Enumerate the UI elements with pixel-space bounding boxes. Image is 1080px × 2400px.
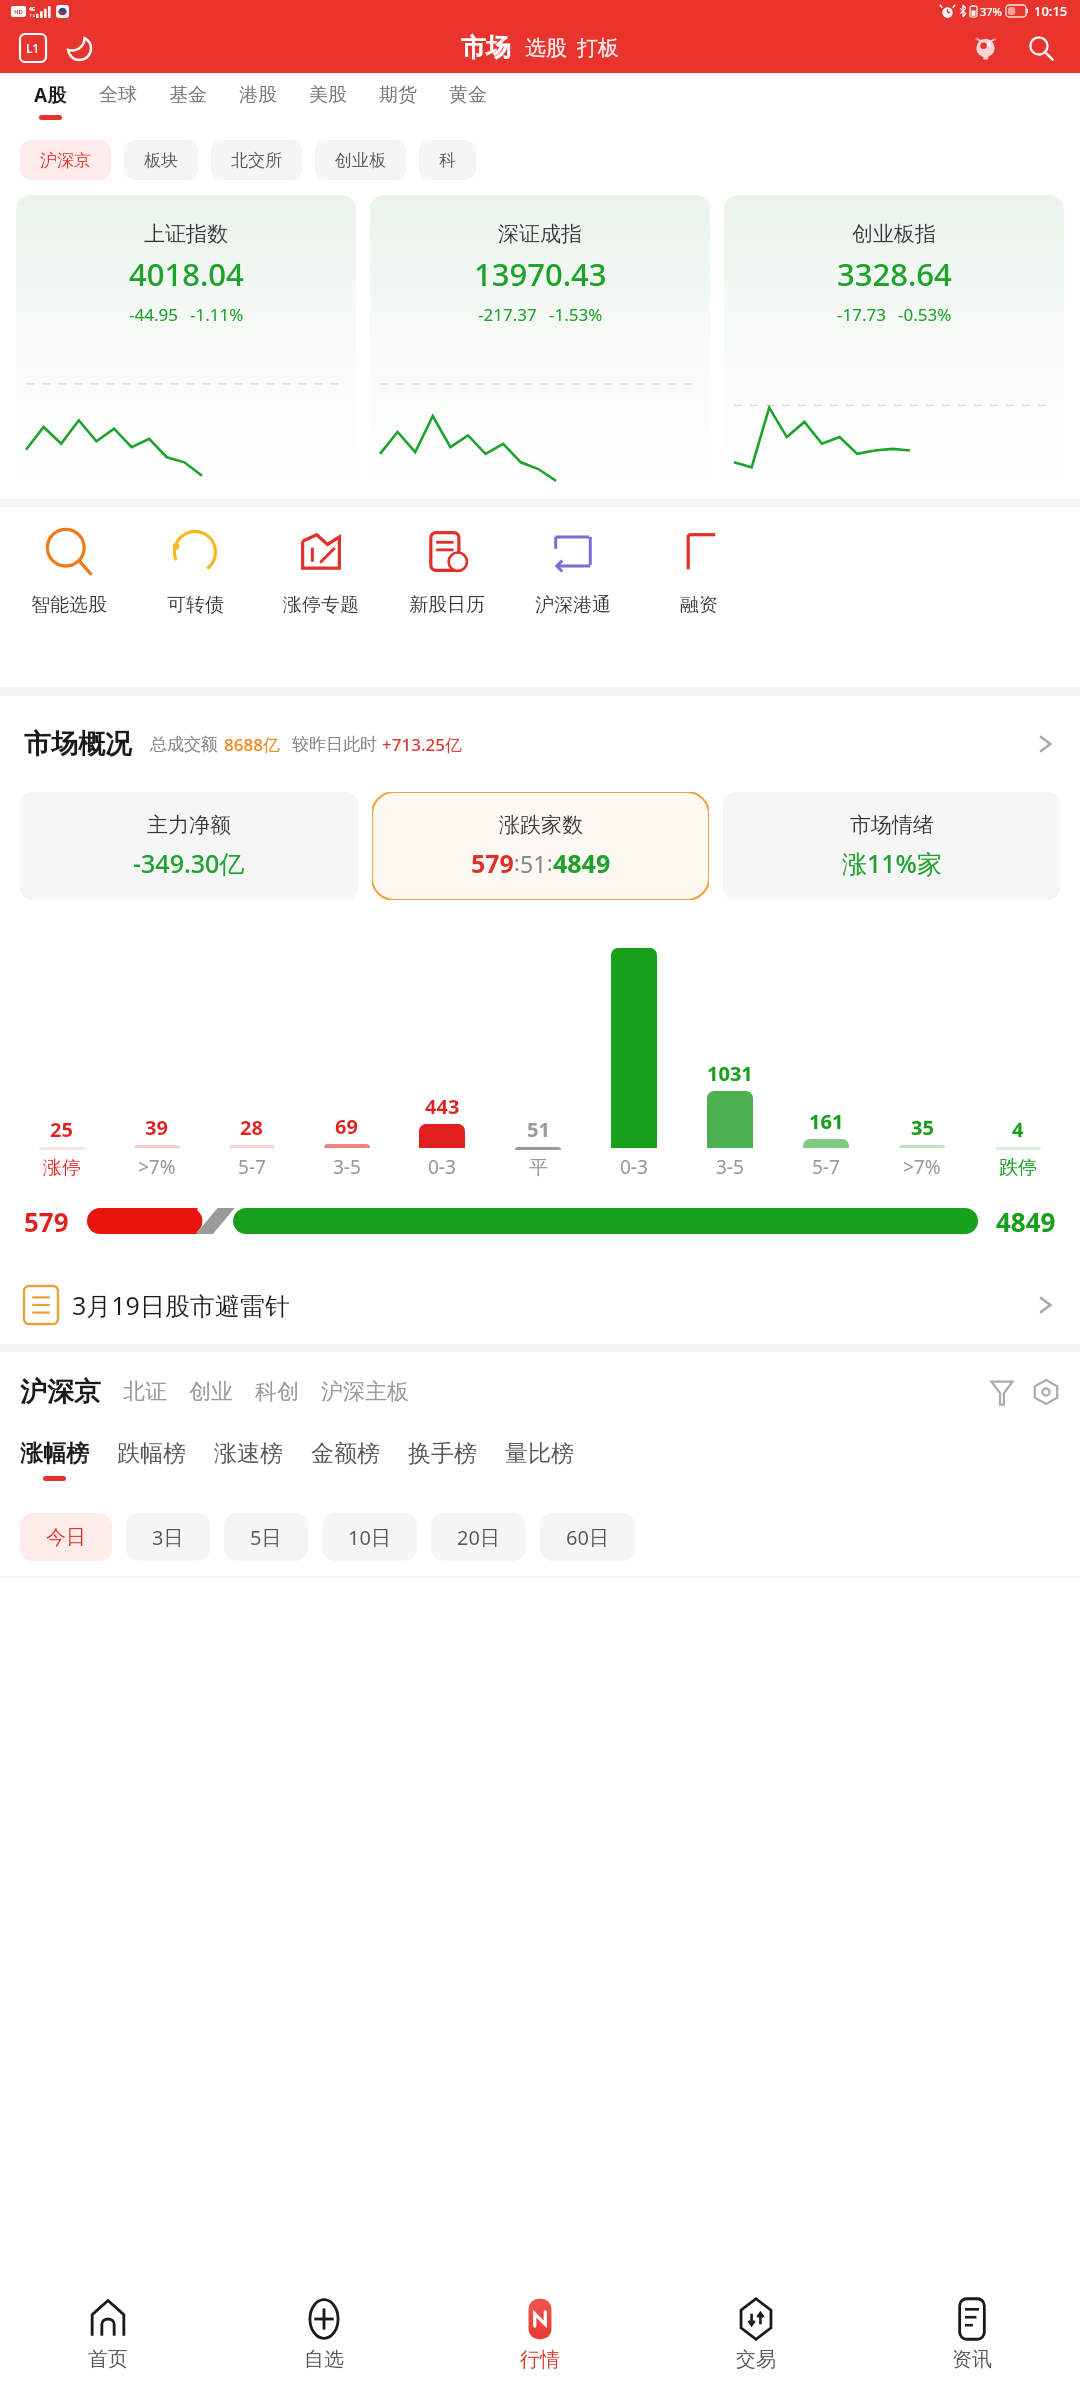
staticText: 深证成指 — [498, 221, 582, 247]
button[interactable]: 换手榜 — [408, 1439, 477, 1481]
button[interactable]: 涨跌家数 — [372, 792, 709, 900]
button[interactable]: 涨停专题 — [258, 525, 384, 617]
button[interactable]: Search — [1024, 31, 1058, 65]
button[interactable]: 60日 — [540, 1513, 635, 1561]
button[interactable]: 首页 — [0, 2268, 216, 2400]
button[interactable]: 涨幅榜 — [20, 1439, 89, 1481]
staticText: 上证指数 — [144, 221, 228, 247]
staticText: 涨11%家 — [842, 846, 942, 880]
button[interactable]: 创业板指 — [724, 195, 1064, 495]
button[interactable]: 20日 — [431, 1513, 526, 1561]
button[interactable]: 沪深京 — [20, 1375, 101, 1409]
button[interactable]: 全球 — [99, 73, 137, 129]
staticText: 3月19日股市避雷针 — [72, 1288, 290, 1322]
button[interactable]: 量比榜 — [505, 1439, 574, 1481]
staticText: 443 — [425, 1093, 460, 1120]
staticText: 10:15 — [1034, 2, 1068, 20]
button[interactable]: 深证成指 — [370, 195, 710, 495]
staticText: ↑↓ — [29, 13, 36, 18]
staticText: 涨停 — [43, 1156, 81, 1180]
staticText: 10日 — [348, 1524, 391, 1551]
staticText: 51 — [520, 848, 547, 879]
button[interactable]: 基金 — [169, 73, 207, 129]
button[interactable]: 市场 — [461, 32, 511, 63]
button[interactable]: 10日 — [322, 1513, 417, 1561]
button[interactable]: 科 — [419, 140, 476, 180]
staticText: -349.30亿 — [133, 846, 245, 880]
button[interactable]: 跌幅榜 — [117, 1439, 186, 1481]
staticText: 换手榜 — [408, 1439, 477, 1468]
button[interactable]: A股 — [34, 73, 67, 129]
staticText: 沪深京 — [40, 150, 91, 171]
button[interactable]: 港股 — [239, 73, 277, 129]
button[interactable]: 市场情绪 — [723, 792, 1060, 900]
staticText: 基金 — [169, 83, 207, 107]
button[interactable]: 打板 — [577, 35, 619, 63]
button[interactable]: 黄金 — [449, 73, 487, 129]
button[interactable]: Filter — [984, 1374, 1020, 1410]
button[interactable]: 智能选股 — [6, 525, 132, 617]
staticText: 3-5 — [333, 1154, 361, 1180]
button[interactable]: Night mode — [64, 33, 94, 63]
staticText: 金额榜 — [311, 1439, 380, 1468]
button[interactable]: 美股 — [309, 73, 347, 129]
staticText: 较昨日此时 — [292, 734, 377, 755]
button[interactable]: 金额榜 — [311, 1439, 380, 1481]
button[interactable]: 选股 — [525, 35, 567, 63]
staticText: 创业 — [189, 1378, 233, 1406]
button[interactable]: 北交所 — [211, 140, 302, 180]
staticText: -1.11% — [190, 303, 244, 326]
button[interactable]: 交易 — [648, 2268, 864, 2400]
button[interactable]: 自选 — [216, 2268, 432, 2400]
button[interactable]: 北证 — [123, 1378, 167, 1406]
button[interactable]: 涨速榜 — [214, 1439, 283, 1481]
staticText: A股 — [34, 82, 67, 108]
staticText: 沪深港通 — [535, 593, 611, 617]
staticText: 融资 — [680, 593, 718, 617]
staticText: 市场情绪 — [850, 812, 934, 838]
staticText: 51 — [527, 1116, 550, 1143]
button[interactable]: Assistant — [968, 31, 1002, 65]
button[interactable]: Level 1 — [20, 34, 46, 62]
button[interactable]: 可转债 — [132, 525, 258, 617]
staticText: 3日 — [152, 1524, 184, 1551]
button[interactable]: 今日 — [20, 1513, 112, 1561]
button[interactable]: 创业板 — [315, 140, 406, 180]
button[interactable]: 板块 — [124, 140, 198, 180]
staticText: 4849 — [996, 1204, 1056, 1239]
button[interactable]: 3日 — [126, 1513, 210, 1561]
button[interactable]: 期货 — [379, 73, 417, 129]
staticText: 创业板指 — [852, 221, 936, 247]
staticText: -0.53% — [898, 303, 952, 326]
staticText: 4849 — [553, 846, 611, 880]
button[interactable]: 新股日历 — [384, 525, 510, 617]
button[interactable]: 创业 — [189, 1378, 233, 1406]
staticText: : — [514, 849, 520, 878]
staticText: 5-7 — [812, 1154, 840, 1180]
staticText: 打板 — [577, 35, 619, 61]
staticText: 涨速榜 — [214, 1439, 283, 1468]
button[interactable]: 融资 — [636, 525, 762, 617]
button[interactable]: Settings — [1028, 1374, 1064, 1410]
staticText: 科 — [439, 150, 456, 171]
staticText: 13970.43 — [474, 253, 607, 295]
button[interactable]: 3月19日股市避雷针 — [0, 1266, 1080, 1344]
button[interactable]: 沪深京 — [20, 140, 111, 180]
button[interactable]: 资讯 — [864, 2268, 1080, 2400]
staticText: >7% — [903, 1154, 941, 1180]
button[interactable]: 5日 — [224, 1513, 308, 1561]
staticText: : — [547, 849, 553, 878]
button[interactable]: 行情 — [432, 2268, 648, 2400]
button[interactable]: 沪深主板 — [321, 1378, 409, 1406]
button[interactable]: 上证指数 — [16, 195, 356, 495]
staticText: 4018.04 — [129, 253, 244, 295]
button[interactable]: 主力净额 — [20, 792, 358, 900]
staticText: 主力净额 — [147, 812, 231, 838]
button[interactable]: 科创 — [255, 1378, 299, 1406]
staticText: 涨停专题 — [283, 593, 359, 617]
staticText: 今日 — [46, 1525, 86, 1550]
staticText: +713.25亿 — [382, 733, 462, 756]
button[interactable]: 沪深港通 — [510, 525, 636, 617]
staticText: 39 — [145, 1114, 168, 1141]
button[interactable]: 市场概况 — [0, 696, 1080, 792]
